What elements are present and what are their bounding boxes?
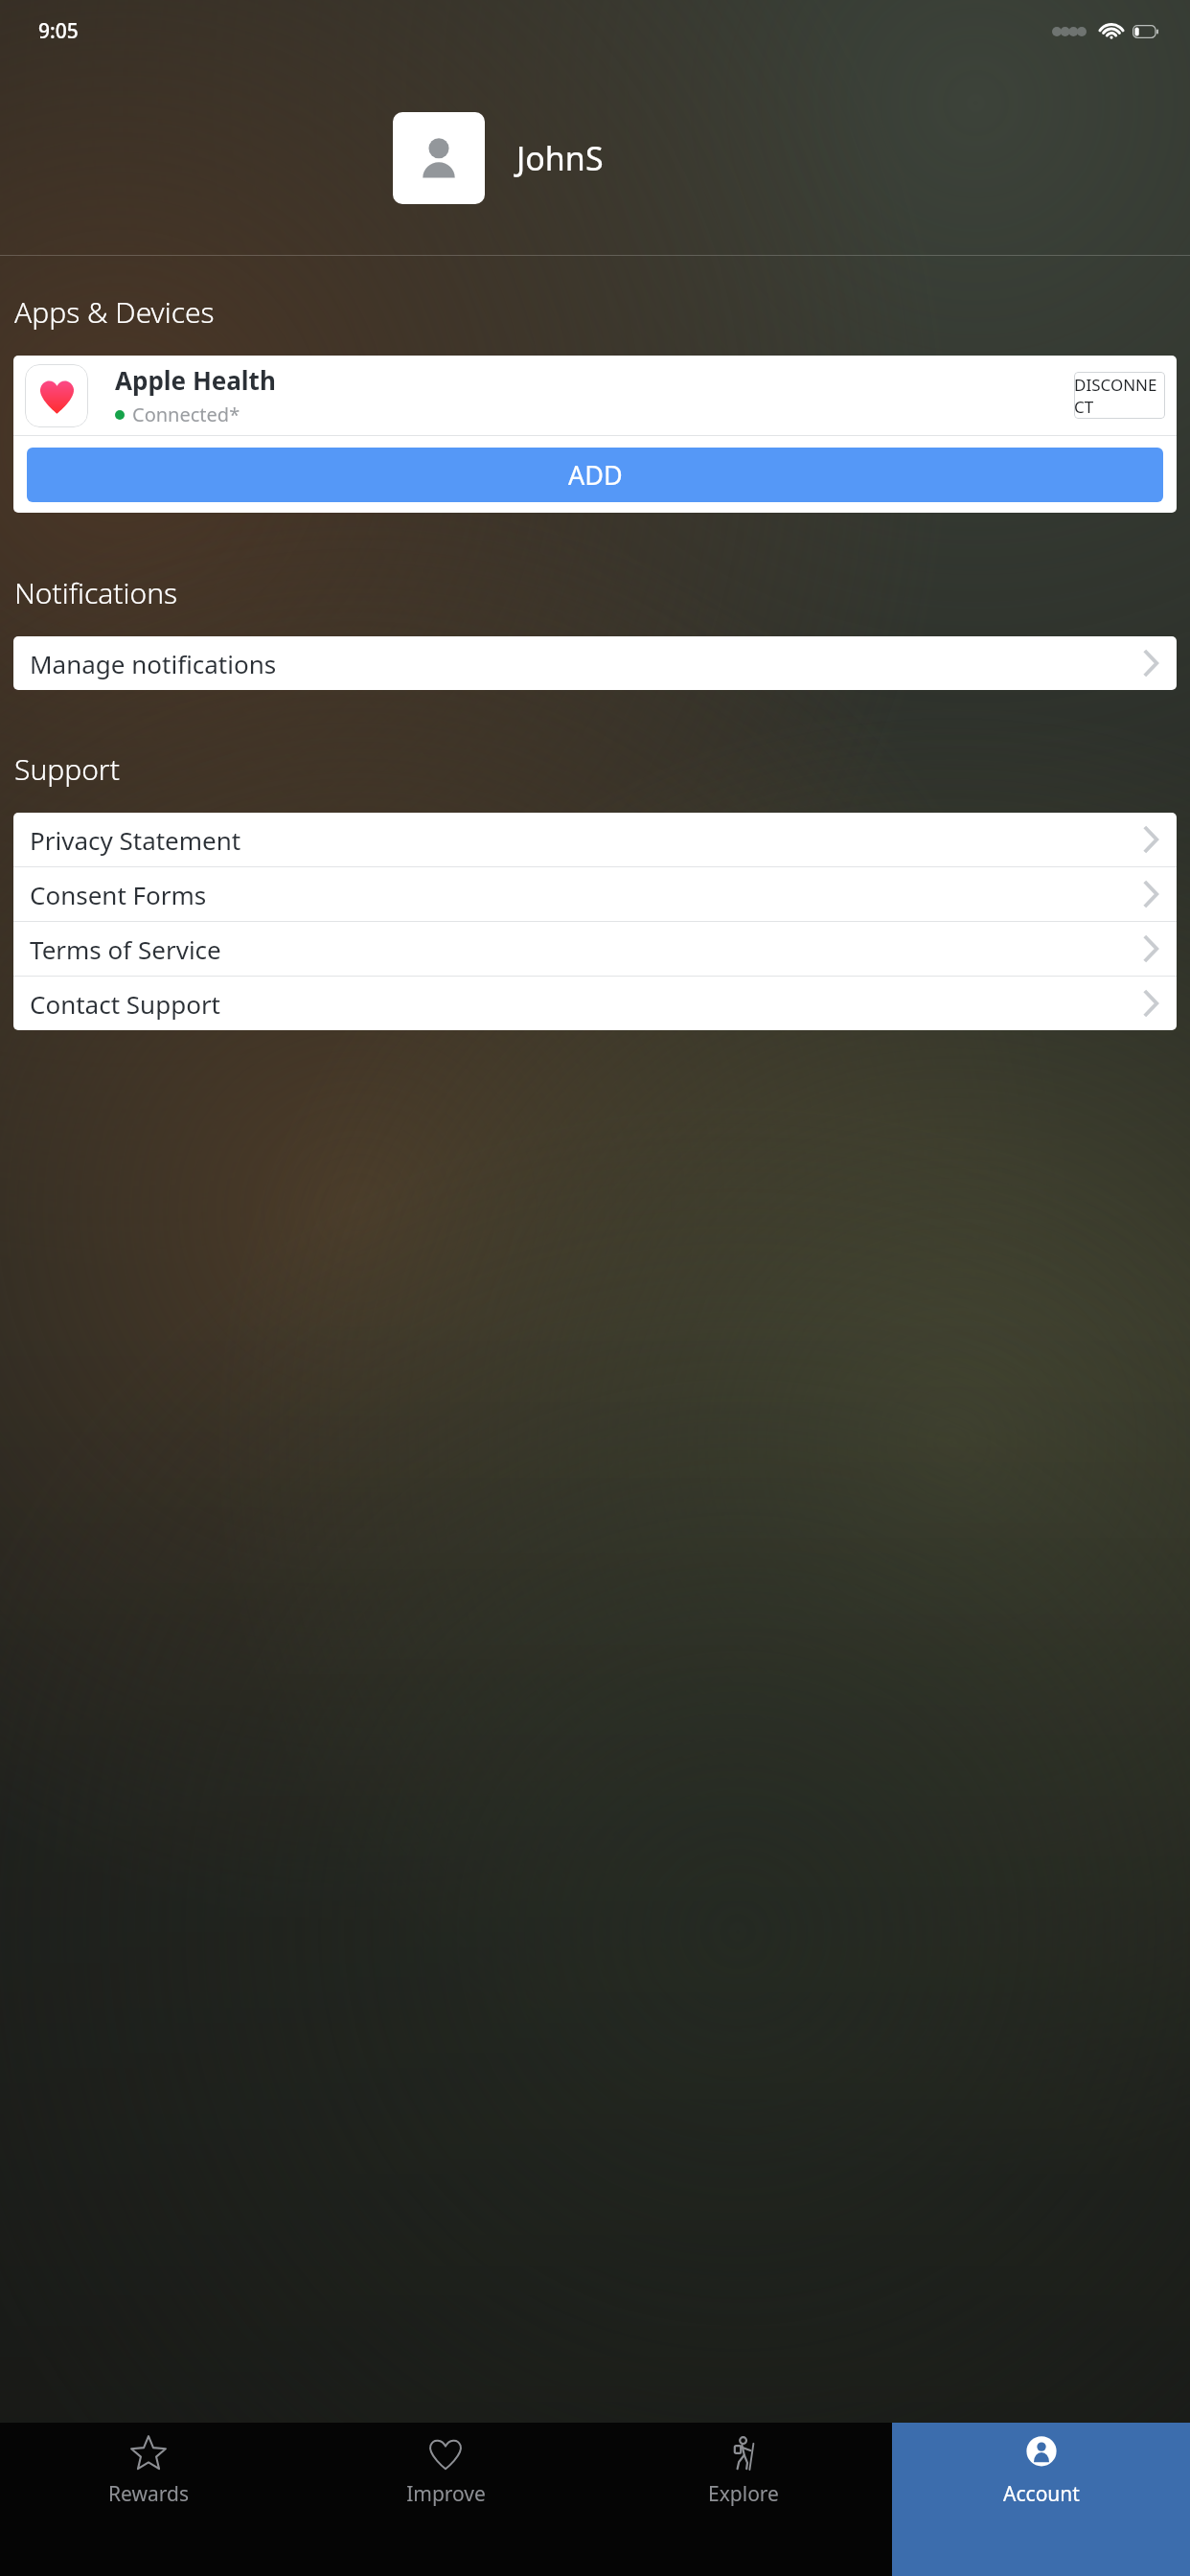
staticText: DISCONNECT <box>1074 374 1165 418</box>
button[interactable]: DISCONNECT <box>1074 372 1165 419</box>
button[interactable]: Profile photo <box>393 112 485 204</box>
button[interactable]: Account <box>892 2423 1190 2576</box>
staticText: Improve <box>406 2480 486 2508</box>
button[interactable]: ADD <box>27 448 1163 502</box>
button[interactable]: Rewards <box>0 2423 297 2576</box>
button[interactable]: Explore <box>594 2423 892 2576</box>
staticText: Explore <box>708 2480 779 2508</box>
button[interactable]: Privacy Statement <box>13 813 1177 866</box>
staticText: JohnS <box>516 136 604 180</box>
staticText: Consent Forms <box>30 878 1143 911</box>
button[interactable]: Consent Forms <box>13 867 1177 921</box>
staticText: 9:05 <box>38 17 79 45</box>
staticText: Manage notifications <box>30 647 1143 680</box>
button[interactable]: Improve <box>297 2423 594 2576</box>
staticText: Privacy Statement <box>30 823 1143 857</box>
button[interactable]: Manage notifications <box>13 636 1177 690</box>
staticText: Connected* <box>132 402 240 427</box>
staticText: Apps & Devices <box>14 292 215 332</box>
staticText: Contact Support <box>30 987 1143 1021</box>
staticText: Account <box>1003 2480 1080 2508</box>
staticText: Terms of Service <box>30 932 1143 966</box>
staticText: Rewards <box>108 2480 189 2508</box>
button[interactable]: Terms of Service <box>13 922 1177 976</box>
staticText: Support <box>14 749 120 789</box>
button[interactable]: Contact Support <box>13 977 1177 1030</box>
staticText: Notifications <box>14 573 178 612</box>
staticText: ADD <box>568 457 623 493</box>
staticText: Apple Health <box>115 363 276 397</box>
